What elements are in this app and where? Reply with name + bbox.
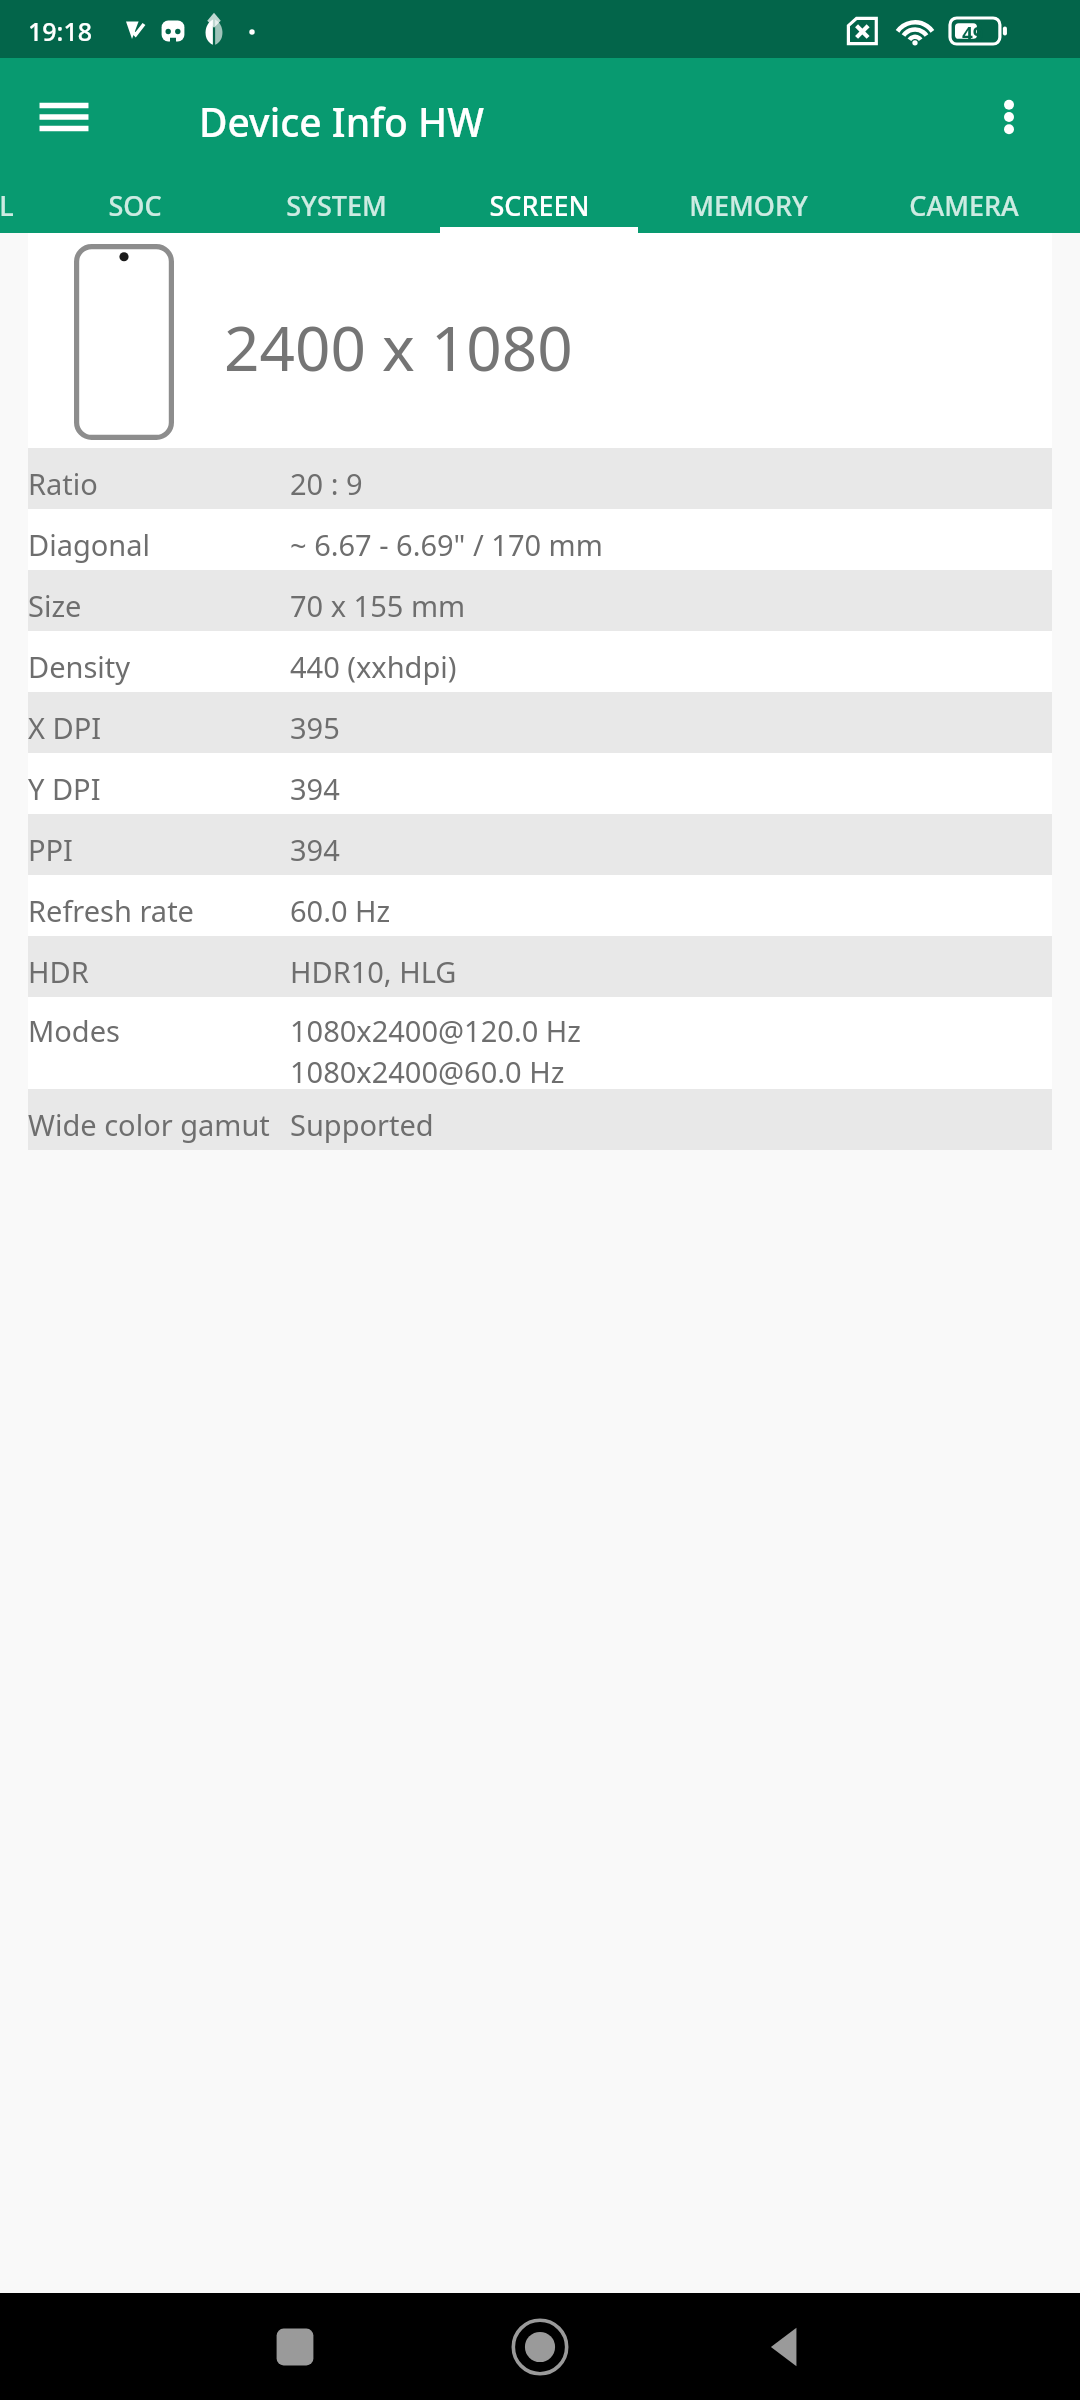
staticText: HDR (28, 952, 89, 991)
staticText: L (0, 187, 14, 224)
staticText: Refresh rate (28, 891, 194, 930)
staticText: Ratio (28, 464, 98, 503)
staticText: 20 : 9 (290, 464, 363, 503)
button[interactable]: More options (975, 83, 1043, 151)
button[interactable]: HDR (28, 936, 1052, 997)
button[interactable]: Diagonal (28, 509, 1052, 570)
staticText: HDR10, HLG (290, 952, 457, 991)
staticText: 395 (290, 708, 340, 747)
staticText: 1080x2400@60.0 Hz (290, 1052, 565, 1091)
button[interactable]: Recent apps (235, 2293, 355, 2400)
staticText: 70 x 155 mm (290, 586, 466, 625)
staticText: PPI (28, 830, 73, 869)
staticText: Size (28, 586, 82, 625)
staticText: 19:18 (28, 14, 93, 48)
staticText: 394 (290, 830, 340, 869)
button[interactable]: Size (28, 570, 1052, 631)
staticText: Density (28, 647, 131, 686)
button[interactable]: Back (725, 2293, 845, 2400)
staticText: SCREEN (489, 187, 590, 224)
staticText: 1080x2400@120.0 Hz (290, 1011, 581, 1050)
staticText: ~ 6.67 - 6.69" / 170 mm (290, 525, 603, 564)
staticText: Supported (290, 1105, 434, 1144)
staticText: MEMORY (689, 187, 808, 224)
staticText: CAMERA (909, 187, 1019, 224)
staticText: 440 (xxhdpi) (290, 647, 457, 686)
staticText: 49 (962, 21, 984, 47)
staticText: 2400 x 1080 (224, 305, 573, 389)
button[interactable]: Ratio (28, 448, 1052, 509)
button[interactable]: Wide color gamut (28, 1089, 1052, 1150)
button[interactable]: Density (28, 631, 1052, 692)
button[interactable]: MEMORY (638, 177, 858, 233)
staticText: SOC (108, 187, 162, 224)
button[interactable]: PPI (28, 814, 1052, 875)
button[interactable]: SOC (25, 177, 245, 233)
staticText: X DPI (28, 708, 102, 747)
button[interactable]: CAMERA (854, 177, 1074, 233)
button[interactable]: Modes (28, 997, 1052, 1089)
button[interactable]: Y DPI (28, 753, 1052, 814)
button[interactable]: Refresh rate (28, 875, 1052, 936)
staticText: 394 (290, 769, 340, 808)
staticText: Modes (28, 1011, 120, 1050)
staticText: 60.0 Hz (290, 891, 391, 930)
button[interactable]: L (0, 177, 116, 233)
button[interactable]: SCREEN (429, 177, 649, 233)
button[interactable]: Open navigation menu (28, 81, 100, 153)
staticText: Diagonal (28, 525, 150, 564)
staticText: SYSTEM (286, 187, 387, 224)
staticText: Device Info HW (199, 95, 484, 148)
staticText: Y DPI (28, 769, 101, 808)
staticText: Wide color gamut (28, 1105, 270, 1144)
button[interactable]: Home (480, 2293, 600, 2400)
button[interactable]: SYSTEM (226, 177, 446, 233)
button[interactable]: X DPI (28, 692, 1052, 753)
